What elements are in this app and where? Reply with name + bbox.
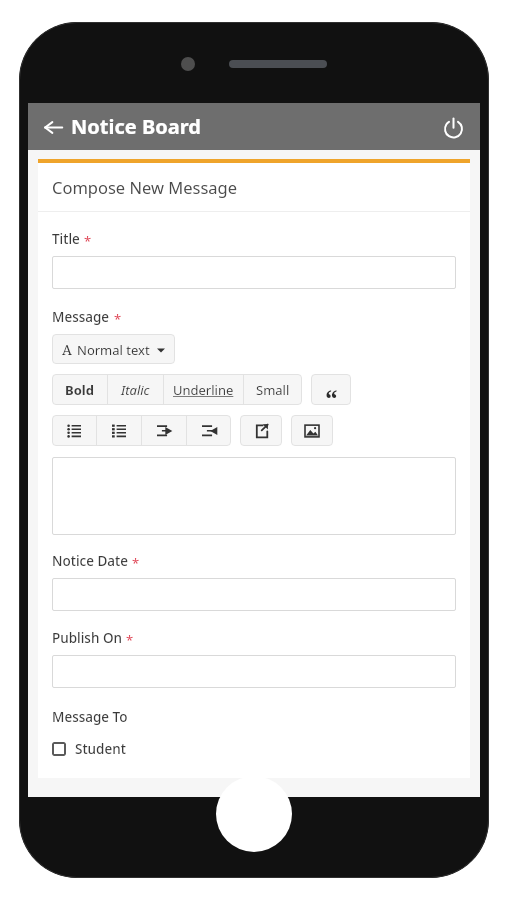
staticText: Underline [173, 381, 234, 399]
staticText: Italic [121, 381, 150, 399]
button[interactable]: Increase indent [142, 415, 186, 446]
button[interactable]: Decrease indent [187, 415, 231, 446]
staticText: Student [75, 740, 126, 758]
staticText: Normal text [77, 341, 150, 359]
staticText: Notice Date [52, 552, 128, 570]
staticText: * [126, 631, 134, 649]
button[interactable]: Bold [52, 374, 107, 405]
button[interactable] [52, 578, 456, 611]
staticText: * [114, 310, 122, 328]
staticText: * [84, 232, 92, 250]
staticText: Small [256, 381, 290, 399]
staticText: Title [52, 230, 80, 248]
staticText: Publish On [52, 629, 122, 647]
staticText: * [132, 554, 140, 572]
staticText: Bold [65, 381, 94, 399]
button[interactable]: Logout [436, 110, 470, 144]
button[interactable] [52, 457, 456, 535]
button[interactable]: Insert image [291, 415, 333, 446]
staticText: Message To [52, 708, 128, 726]
button[interactable]: Small [244, 374, 302, 405]
button[interactable] [52, 256, 456, 289]
button[interactable]: Student [52, 740, 126, 758]
button[interactable]: A [52, 334, 175, 364]
button[interactable]: Underline [164, 374, 243, 405]
button[interactable] [52, 655, 456, 688]
button[interactable]: Bulleted list [52, 415, 96, 446]
button[interactable]: Back [40, 114, 66, 140]
staticText: Compose New Message [52, 176, 238, 198]
staticText: Message [52, 308, 110, 326]
staticText: A [62, 340, 72, 359]
staticText: Notice Board [71, 113, 201, 140]
button[interactable]: Numbered list [97, 415, 141, 446]
button[interactable]: Italic [108, 374, 163, 405]
button[interactable]: Insert link [240, 415, 282, 446]
button[interactable]: Quote [311, 374, 351, 405]
staticText: “ [325, 380, 338, 405]
